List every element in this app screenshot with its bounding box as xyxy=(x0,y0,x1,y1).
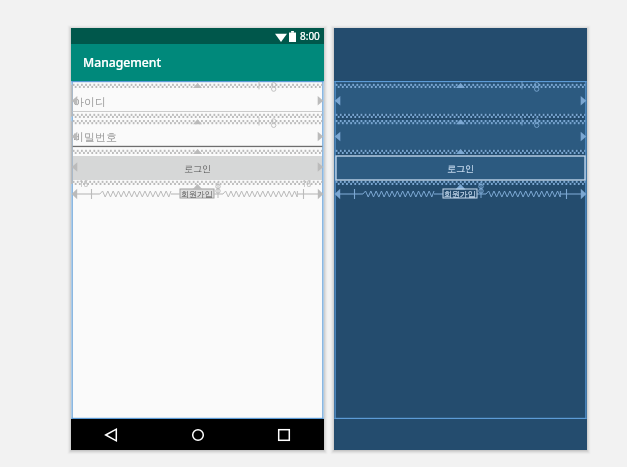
staticText: 로그인 xyxy=(184,163,211,174)
button[interactable]: Recent apps xyxy=(271,422,297,448)
button[interactable]: Wifi signal xyxy=(71,28,324,44)
button[interactable]: 회원가입 xyxy=(180,189,214,198)
button[interactable]: 로그인 xyxy=(334,28,587,450)
staticText: 16 xyxy=(79,178,89,189)
button[interactable]: Management xyxy=(71,44,324,81)
staticText: Management xyxy=(83,54,162,71)
staticText: 회원가입 xyxy=(444,189,476,198)
staticText: 로그인 xyxy=(447,163,474,174)
button[interactable]: 회원가입 xyxy=(443,189,477,198)
button[interactable]: Home xyxy=(185,422,211,448)
staticText: 16 xyxy=(302,178,312,189)
button[interactable]: Back xyxy=(98,422,124,448)
other: Wifi signal xyxy=(275,31,287,42)
staticText: 8:00 xyxy=(300,29,320,43)
button[interactable]: 로그인 xyxy=(336,156,585,180)
other: Battery xyxy=(289,31,296,42)
staticText: 회원가입 xyxy=(181,189,213,198)
staticText: 비밀번호 xyxy=(73,130,117,144)
button[interactable]: 비밀번호 xyxy=(72,127,262,146)
staticText: 아이디 xyxy=(73,95,106,109)
button[interactable]: 아이디 xyxy=(72,92,262,111)
button[interactable]: 로그인 xyxy=(73,156,322,180)
